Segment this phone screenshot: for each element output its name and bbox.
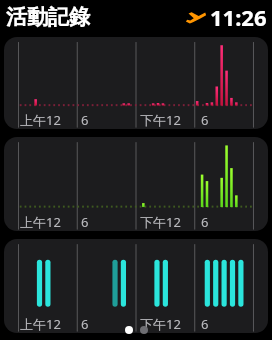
staticText: 11:26 xyxy=(210,2,267,32)
staticText: 活動記錄 xyxy=(6,4,90,30)
staticText: 上午12 xyxy=(20,111,61,129)
staticText: 6 xyxy=(201,111,209,129)
staticText: 6 xyxy=(81,213,89,231)
staticText: 下午12 xyxy=(140,213,181,231)
button[interactable]: 上午12 xyxy=(4,137,268,231)
staticText: 6 xyxy=(201,213,209,231)
staticText: 6 xyxy=(201,315,209,333)
other: Airplane mode xyxy=(185,6,207,28)
button[interactable]: 活動記錄 xyxy=(0,0,272,34)
staticText: 下午12 xyxy=(140,111,181,129)
staticText: 上午12 xyxy=(20,213,61,231)
staticText: 6 xyxy=(81,315,89,333)
staticText: 6 xyxy=(81,111,89,129)
button[interactable]: 上午12 xyxy=(4,37,268,129)
button[interactable]: 上午12 xyxy=(4,239,268,333)
staticText: 下午12 xyxy=(140,315,181,333)
staticText: 上午12 xyxy=(20,315,61,333)
